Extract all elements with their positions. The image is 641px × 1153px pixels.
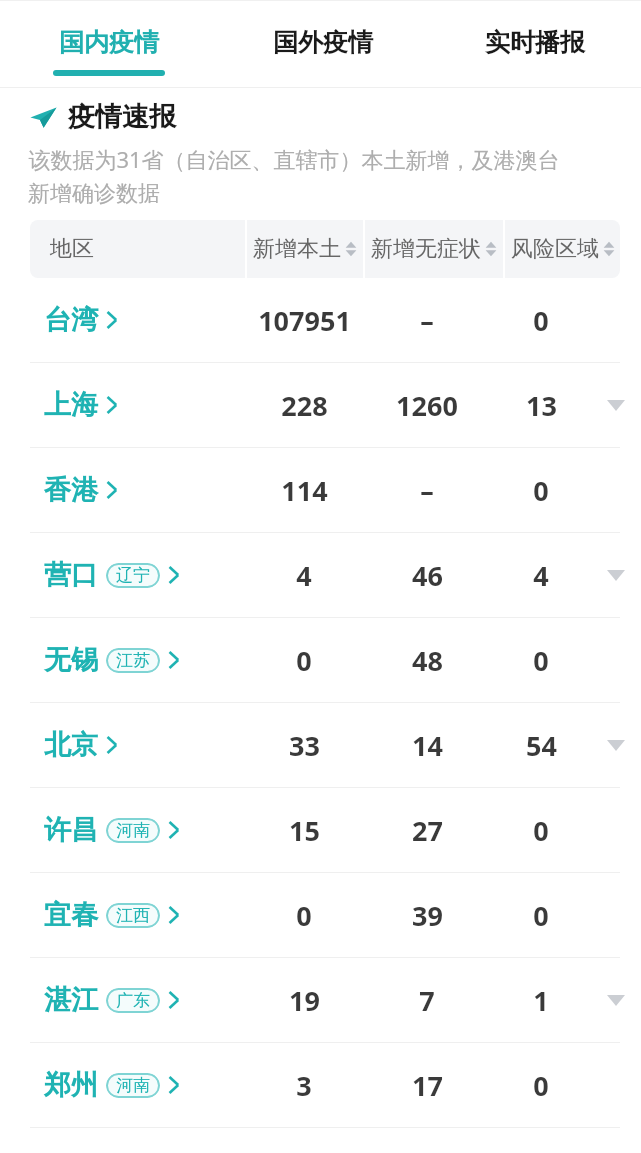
staticText: 0 xyxy=(533,897,549,934)
staticText: 4 xyxy=(533,557,549,594)
staticText: 228 xyxy=(281,387,328,424)
button[interactable]: 展开风险区域 xyxy=(599,388,633,422)
button[interactable]: 香港 xyxy=(0,448,641,532)
staticText: 辽宁 xyxy=(116,565,150,586)
staticText: 0 xyxy=(533,812,549,849)
staticText: 该数据为31省（自治区、直辖市）本土新增，及港澳台 xyxy=(28,144,560,174)
staticText: 国外疫情 xyxy=(273,27,373,58)
button[interactable]: 展开风险区域 xyxy=(599,728,633,762)
button[interactable]: 许昌 xyxy=(0,788,641,872)
staticText: 0 xyxy=(533,642,549,679)
button[interactable]: 展开风险区域 xyxy=(599,558,633,592)
staticText: 营口 xyxy=(44,558,98,592)
staticText: 江西 xyxy=(116,905,150,926)
button[interactable]: 湛江 xyxy=(0,958,641,1042)
staticText: – xyxy=(420,302,434,339)
staticText: 3 xyxy=(296,1067,312,1104)
button[interactable]: 国内疫情 xyxy=(0,1,218,87)
button[interactable]: 营口 xyxy=(0,533,641,617)
staticText: 北京 xyxy=(44,728,98,762)
staticText: 河南 xyxy=(116,820,150,841)
staticText: 0 xyxy=(296,642,312,679)
staticText: 107951 xyxy=(258,302,351,339)
button[interactable]: 实时播报 xyxy=(428,1,641,87)
button[interactable]: 郑州 xyxy=(0,1043,641,1127)
staticText: 1 xyxy=(533,982,549,1019)
staticText: 19 xyxy=(289,982,320,1019)
staticText: 无锡 xyxy=(44,643,98,677)
button[interactable]: 宜春 xyxy=(0,873,641,957)
staticText: 郑州 xyxy=(44,1068,98,1102)
button[interactable]: 展开风险区域 xyxy=(599,983,633,1017)
staticText: 0 xyxy=(533,472,549,509)
staticText: 46 xyxy=(412,557,443,594)
staticText: 1260 xyxy=(396,387,458,424)
staticText: 54 xyxy=(526,727,557,764)
button[interactable]: 台湾 xyxy=(0,278,641,362)
staticText: 33 xyxy=(289,727,320,764)
staticText: 许昌 xyxy=(44,813,98,847)
staticText: 13 xyxy=(526,387,557,424)
staticText: 14 xyxy=(412,727,443,764)
staticText: 4 xyxy=(296,557,312,594)
staticText: 114 xyxy=(281,472,328,509)
button[interactable]: 北京 xyxy=(0,703,641,787)
staticText: 江苏 xyxy=(116,650,150,671)
staticText: 上海 xyxy=(44,388,98,422)
staticText: 7 xyxy=(419,982,435,1019)
staticText: 实时播报 xyxy=(485,27,585,58)
staticText: 疫情速报 xyxy=(68,100,176,134)
staticText: 河南 xyxy=(116,1075,150,1096)
staticText: 台湾 xyxy=(44,303,98,337)
staticText: – xyxy=(420,472,434,509)
staticText: 湛江 xyxy=(44,983,98,1017)
button[interactable]: 国外疫情 xyxy=(218,1,428,87)
button[interactable]: 无锡 xyxy=(0,618,641,702)
staticText: 新增无症状 xyxy=(371,235,481,263)
staticText: 0 xyxy=(533,302,549,339)
staticText: 48 xyxy=(412,642,443,679)
staticText: 15 xyxy=(289,812,320,849)
staticText: 地区 xyxy=(50,235,94,263)
staticText: 新增本土 xyxy=(253,235,341,263)
staticText: 17 xyxy=(412,1067,443,1104)
staticText: 广东 xyxy=(116,990,150,1011)
button[interactable]: 新增无症状 xyxy=(365,220,503,278)
staticText: 39 xyxy=(412,897,443,934)
staticText: 0 xyxy=(533,1067,549,1104)
staticText: 0 xyxy=(296,897,312,934)
staticText: 新增确诊数据 xyxy=(28,180,160,208)
button[interactable]: 上海 xyxy=(0,363,641,447)
staticText: 27 xyxy=(412,812,443,849)
staticText: 风险区域 xyxy=(511,235,599,263)
staticText: 香港 xyxy=(44,473,98,507)
button[interactable]: 新增本土 xyxy=(247,220,363,278)
staticText: 国内疫情 xyxy=(59,27,159,58)
button[interactable]: 风险区域 xyxy=(505,220,620,278)
staticText: 宜春 xyxy=(44,898,98,932)
